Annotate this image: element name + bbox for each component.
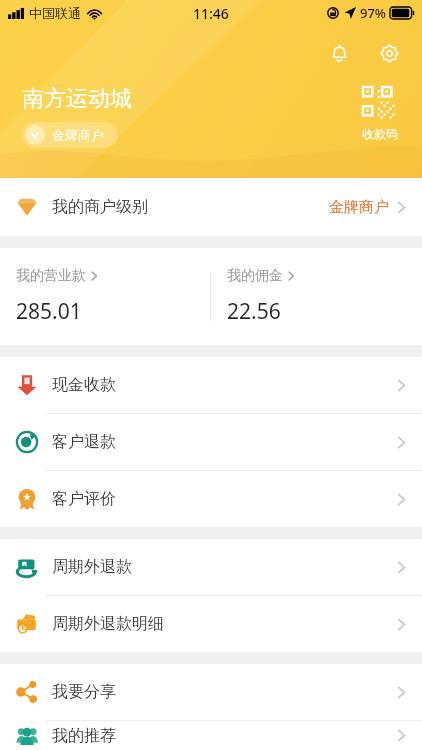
button[interactable]: Notifications (322, 36, 356, 70)
button[interactable]: 客户评价 (0, 471, 422, 527)
button[interactable]: 我的营业款 (16, 248, 210, 345)
button[interactable]: 我的商户级别 (0, 178, 422, 236)
button[interactable]: 收款码 (358, 83, 402, 145)
staticText: 我的商户级别 (52, 197, 148, 217)
staticText: 我的佣金 (227, 267, 283, 285)
staticText: 22.56 (227, 297, 281, 326)
staticText: 周期外退款明细 (52, 614, 164, 634)
staticText: 我的推荐 (52, 726, 116, 746)
staticText: 97% (360, 4, 386, 22)
staticText: 南方运动城 (22, 85, 132, 113)
staticText: 周期外退款 (52, 557, 132, 577)
button[interactable]: 现金收款 (0, 357, 422, 413)
button[interactable]: 金牌商户 (22, 122, 118, 148)
staticText: 11:46 (193, 4, 229, 23)
staticText: 收款码 (362, 126, 398, 141)
button[interactable]: 周期外退款明细 (0, 596, 422, 652)
button[interactable]: 周期外退款 (0, 539, 422, 595)
staticText: 285.01 (16, 297, 82, 326)
button[interactable]: 客户退款 (0, 414, 422, 470)
staticText: 金牌商户 (52, 127, 104, 143)
staticText: 客户评价 (52, 489, 116, 509)
staticText: 我要分享 (52, 682, 116, 702)
staticText: 金牌商户 (329, 198, 389, 217)
staticText: 客户退款 (52, 432, 116, 452)
staticText: 中国联通 (29, 5, 81, 21)
button[interactable]: 我的推荐 (0, 721, 422, 750)
staticText: 现金收款 (52, 375, 116, 395)
button[interactable]: 我的佣金 (227, 248, 422, 345)
button[interactable]: Settings (372, 36, 406, 70)
button[interactable]: 我要分享 (0, 664, 422, 720)
staticText: 我的营业款 (16, 267, 86, 285)
